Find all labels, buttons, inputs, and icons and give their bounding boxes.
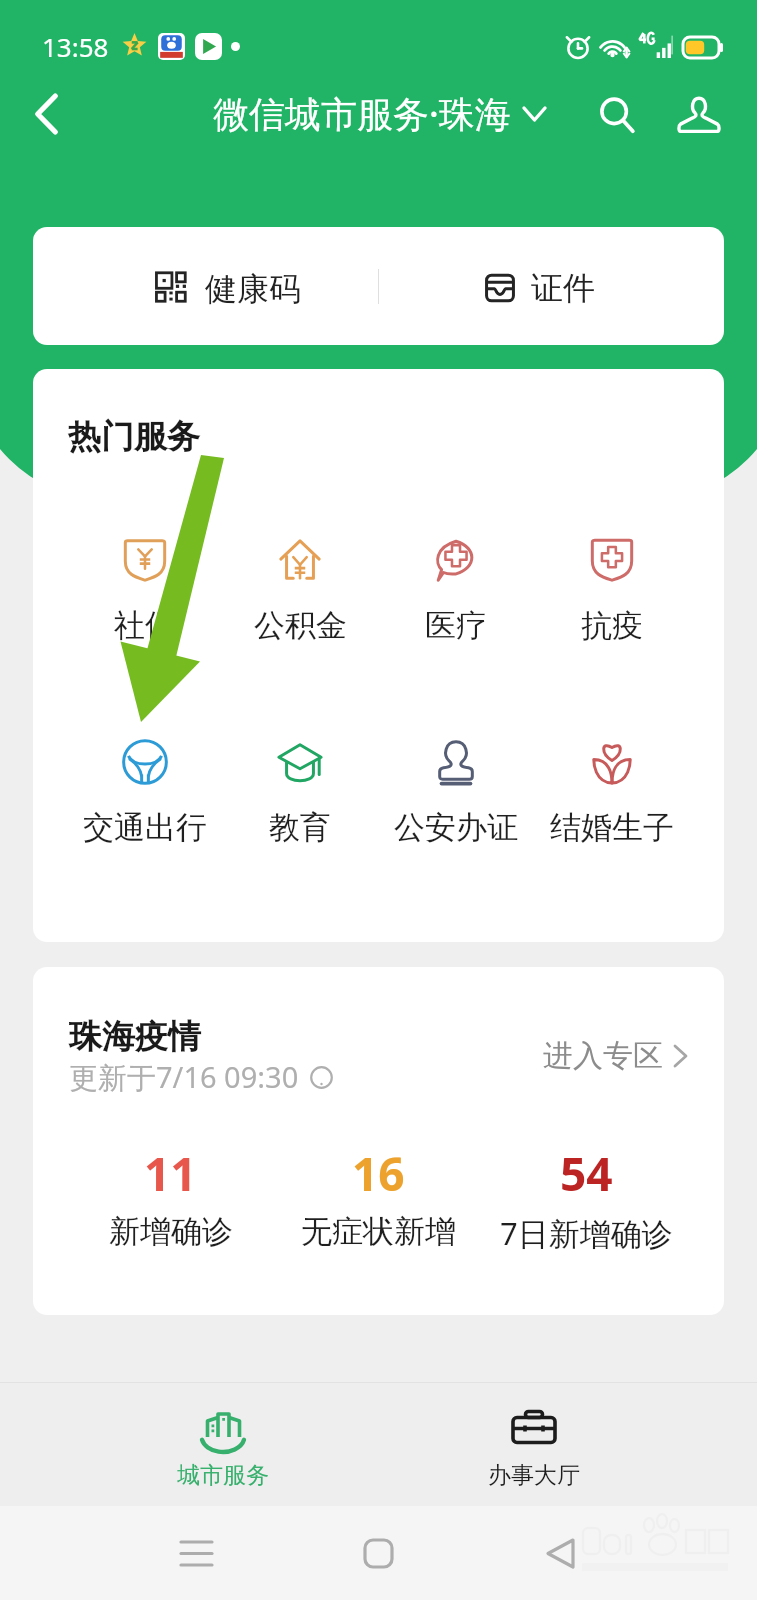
staticText: 微信城市服务·珠海 (213, 89, 511, 138)
staticText: 办事大厅 (488, 1461, 580, 1490)
staticText: 无症状新增 (301, 1212, 456, 1251)
button[interactable]: 城市服务 (67, 1382, 378, 1506)
staticText: 结婚生子 (550, 808, 674, 847)
staticText: 医疗 (425, 606, 487, 645)
staticText: 新增确诊 (109, 1212, 233, 1251)
button[interactable]: 社保 (67, 536, 222, 645)
staticText: 进入专区 (543, 1037, 663, 1075)
button[interactable]: 教育 (222, 738, 378, 847)
button[interactable]: 交通出行 (67, 738, 222, 847)
button[interactable]: Home (287, 1506, 469, 1600)
button[interactable]: 证件 (379, 227, 724, 345)
staticText: 16 (352, 1142, 405, 1205)
staticText: 教育 (269, 808, 331, 847)
staticText: 社保 (114, 606, 176, 645)
button[interactable]: 微信城市服务·珠海 (213, 89, 545, 138)
staticText: 公安办证 (394, 808, 518, 847)
button[interactable]: 结婚生子 (534, 738, 690, 847)
staticText: 更新于7/16 09:30 (69, 1057, 299, 1097)
staticText: 城市服务 (177, 1461, 269, 1490)
button[interactable]: 54 (482, 1142, 690, 1254)
staticText: 54 (560, 1142, 613, 1205)
button[interactable]: 16 (274, 1142, 482, 1251)
staticText: 证件 (531, 268, 595, 308)
button[interactable]: 11 (67, 1142, 274, 1251)
button[interactable]: 公积金 (222, 536, 378, 645)
button[interactable]: 办事大厅 (378, 1382, 690, 1506)
button[interactable]: Search (589, 87, 644, 142)
staticText: 7日新增确诊 (500, 1212, 673, 1254)
button[interactable]: Recents (106, 1506, 287, 1600)
button[interactable]: Back (18, 86, 74, 142)
staticText: 抗疫 (581, 606, 643, 645)
staticText: 交通出行 (83, 808, 207, 847)
button[interactable]: 健康码 (33, 227, 378, 345)
staticText: 公积金 (254, 606, 347, 645)
button[interactable]: 医疗 (378, 536, 534, 645)
button[interactable]: 公安办证 (378, 738, 534, 847)
staticText: 11 (144, 1142, 197, 1205)
button[interactable]: 进入专区 (533, 1025, 696, 1087)
staticText: 13:58 (42, 29, 109, 64)
staticText: 热门服务 (68, 416, 200, 458)
staticText: 珠海疫情 (69, 1016, 201, 1058)
staticText: 健康码 (205, 269, 301, 309)
button[interactable]: 抗疫 (534, 536, 690, 645)
button[interactable]: Profile (671, 87, 726, 142)
button[interactable]: Back (469, 1506, 651, 1600)
